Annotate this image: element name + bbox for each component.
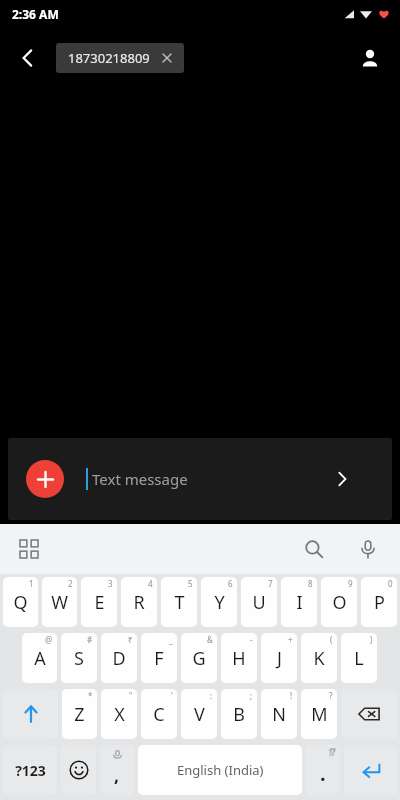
- staticText: ?123: [15, 761, 46, 780]
- button[interactable]: F: [141, 633, 177, 683]
- button[interactable]: Enter: [344, 745, 397, 795]
- staticText: @: [45, 634, 53, 645]
- staticText: R: [133, 590, 145, 615]
- button[interactable]: Q: [3, 577, 38, 627]
- staticText: :: [210, 690, 213, 701]
- button[interactable]: P: [361, 577, 397, 627]
- staticText: T: [174, 590, 185, 615]
- button[interactable]: 18730218809: [56, 43, 184, 73]
- staticText: J: [277, 646, 282, 671]
- staticText: ): [370, 634, 373, 645]
- staticText: ?: [329, 690, 333, 701]
- other: Shift: [3, 689, 58, 739]
- button[interactable]: Search: [296, 531, 332, 567]
- button[interactable]: L: [341, 633, 377, 683]
- button[interactable]: Shift: [3, 689, 58, 739]
- button[interactable]: .: [306, 745, 340, 795]
- staticText: W: [51, 590, 68, 615]
- other: Backspace: [341, 689, 397, 739]
- staticText: 2: [68, 578, 73, 589]
- staticText: 6: [228, 578, 233, 589]
- button[interactable]: K: [301, 633, 337, 683]
- button[interactable]: Z: [62, 689, 97, 739]
- staticText: P: [374, 590, 385, 615]
- button[interactable]: Voice input: [350, 531, 386, 567]
- button[interactable]: R: [121, 577, 157, 627]
- staticText: G: [192, 646, 206, 671]
- staticText: Z: [74, 702, 85, 727]
- staticText: ,: [114, 763, 120, 788]
- button[interactable]: T: [161, 577, 197, 627]
- staticText: X: [114, 702, 125, 727]
- staticText: 18730218809: [68, 49, 150, 67]
- staticText: English (India): [177, 761, 264, 779]
- staticText: -: [250, 634, 253, 645]
- other: Emoji: [61, 745, 96, 795]
- staticText: _: [169, 634, 173, 645]
- staticText: Text message: [92, 469, 188, 489]
- staticText: +: [288, 634, 293, 645]
- staticText: *: [88, 690, 93, 701]
- staticText: S: [74, 646, 84, 671]
- staticText: 0: [388, 578, 393, 589]
- other: Enter: [344, 745, 397, 795]
- button[interactable]: Emoji: [61, 745, 96, 795]
- staticText: ;: [250, 690, 253, 701]
- staticText: 8: [308, 578, 313, 589]
- staticText: 3: [108, 578, 113, 589]
- button[interactable]: D: [101, 633, 137, 683]
- button[interactable]: ,: [100, 745, 134, 795]
- button[interactable]: Y: [201, 577, 237, 627]
- staticText: I: [296, 590, 303, 615]
- staticText: Q: [13, 590, 28, 615]
- staticText: D: [112, 646, 126, 671]
- staticText: !: [290, 690, 293, 701]
- button[interactable]: Back: [6, 36, 50, 80]
- button[interactable]: X: [101, 689, 137, 739]
- button[interactable]: I: [281, 577, 317, 627]
- button[interactable]: H: [221, 633, 257, 683]
- staticText: &: [207, 634, 213, 645]
- staticText: 2:36 AM: [12, 6, 59, 22]
- button[interactable]: J: [261, 633, 297, 683]
- staticText: B: [233, 702, 245, 727]
- button[interactable]: Attach: [26, 460, 64, 498]
- staticText: !?: [330, 746, 336, 757]
- staticText: !?: [329, 747, 335, 758]
- button[interactable]: Backspace: [341, 689, 397, 739]
- staticText: .: [320, 760, 326, 787]
- button[interactable]: Text message: [86, 468, 188, 490]
- staticText: E: [94, 590, 105, 615]
- staticText: ₹: [128, 634, 133, 645]
- button[interactable]: S: [61, 633, 97, 683]
- button[interactable]: English (India): [138, 745, 302, 795]
- button[interactable]: B: [221, 689, 257, 739]
- staticText: K: [313, 646, 325, 671]
- staticText: 9: [348, 578, 353, 589]
- staticText: 4: [148, 578, 153, 589]
- button[interactable]: Clipboard: [10, 530, 48, 568]
- button[interactable]: O: [321, 577, 357, 627]
- staticText: H: [232, 646, 246, 671]
- staticText: L: [354, 646, 364, 671]
- button[interactable]: A: [22, 633, 57, 683]
- button[interactable]: U: [241, 577, 277, 627]
- staticText: O: [332, 590, 347, 615]
- button[interactable]: Send: [324, 461, 360, 497]
- button[interactable]: Contacts: [348, 36, 392, 80]
- staticText: C: [153, 702, 165, 727]
- staticText: Y: [214, 590, 225, 615]
- button[interactable]: N: [261, 689, 297, 739]
- staticText: #: [87, 634, 93, 645]
- button[interactable]: M: [301, 689, 337, 739]
- button[interactable]: W: [42, 577, 77, 627]
- button[interactable]: V: [181, 689, 217, 739]
- button[interactable]: G: [181, 633, 217, 683]
- staticText: N: [272, 702, 286, 727]
- button[interactable]: C: [141, 689, 177, 739]
- button[interactable]: E: [81, 577, 117, 627]
- staticText: ': [171, 690, 173, 701]
- staticText: 7: [268, 578, 273, 589]
- button[interactable]: ?123: [3, 745, 57, 795]
- staticText: A: [34, 646, 46, 671]
